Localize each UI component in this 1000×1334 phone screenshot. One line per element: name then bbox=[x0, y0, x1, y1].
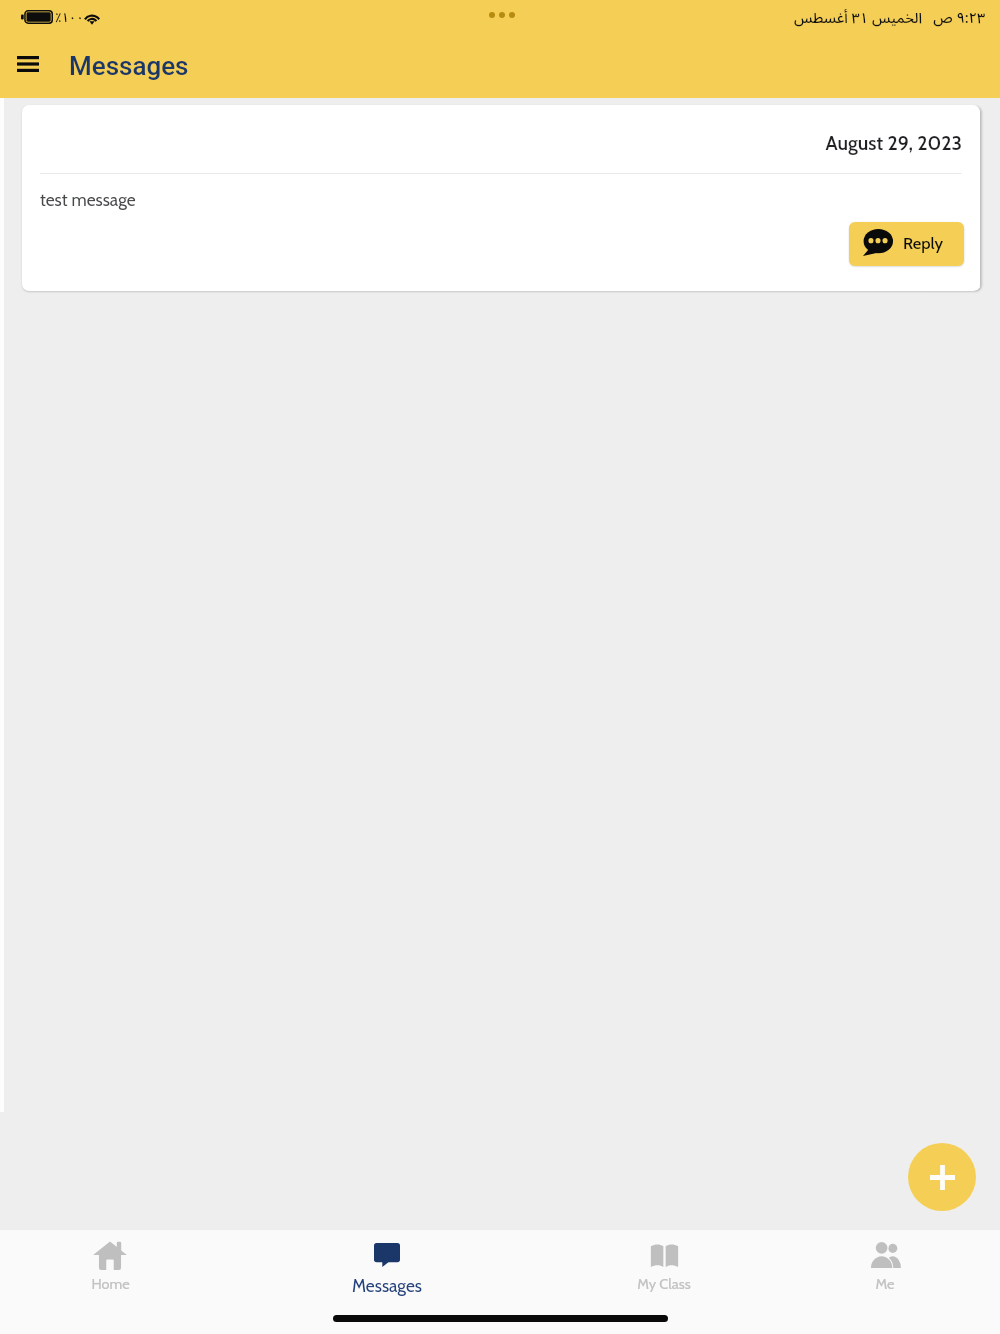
button[interactable]: New message bbox=[908, 1143, 976, 1211]
button[interactable]: My Class bbox=[594, 1238, 734, 1293]
button[interactable]: Reply bbox=[849, 222, 964, 266]
staticText: My Class bbox=[637, 1275, 691, 1293]
staticText: Reply bbox=[903, 233, 944, 253]
staticText: August 29, 2023 bbox=[22, 131, 962, 155]
staticText: ٩:٢٣ ص الخميس ٣١ أغسطس bbox=[794, 3, 986, 34]
button[interactable]: Messages bbox=[317, 1238, 457, 1296]
staticText: test message bbox=[40, 189, 136, 210]
button[interactable]: Home bbox=[40, 1238, 180, 1293]
staticText: Messages bbox=[352, 1275, 422, 1296]
staticText: Me bbox=[875, 1275, 895, 1293]
button[interactable]: Open navigation menu bbox=[6, 45, 50, 89]
staticText: ٪١٠٠ bbox=[55, 4, 84, 31]
staticText: Messages bbox=[69, 51, 189, 81]
staticText: Home bbox=[91, 1275, 130, 1293]
button[interactable]: August 29, 2023 bbox=[22, 105, 980, 291]
button[interactable]: Me bbox=[815, 1238, 955, 1293]
